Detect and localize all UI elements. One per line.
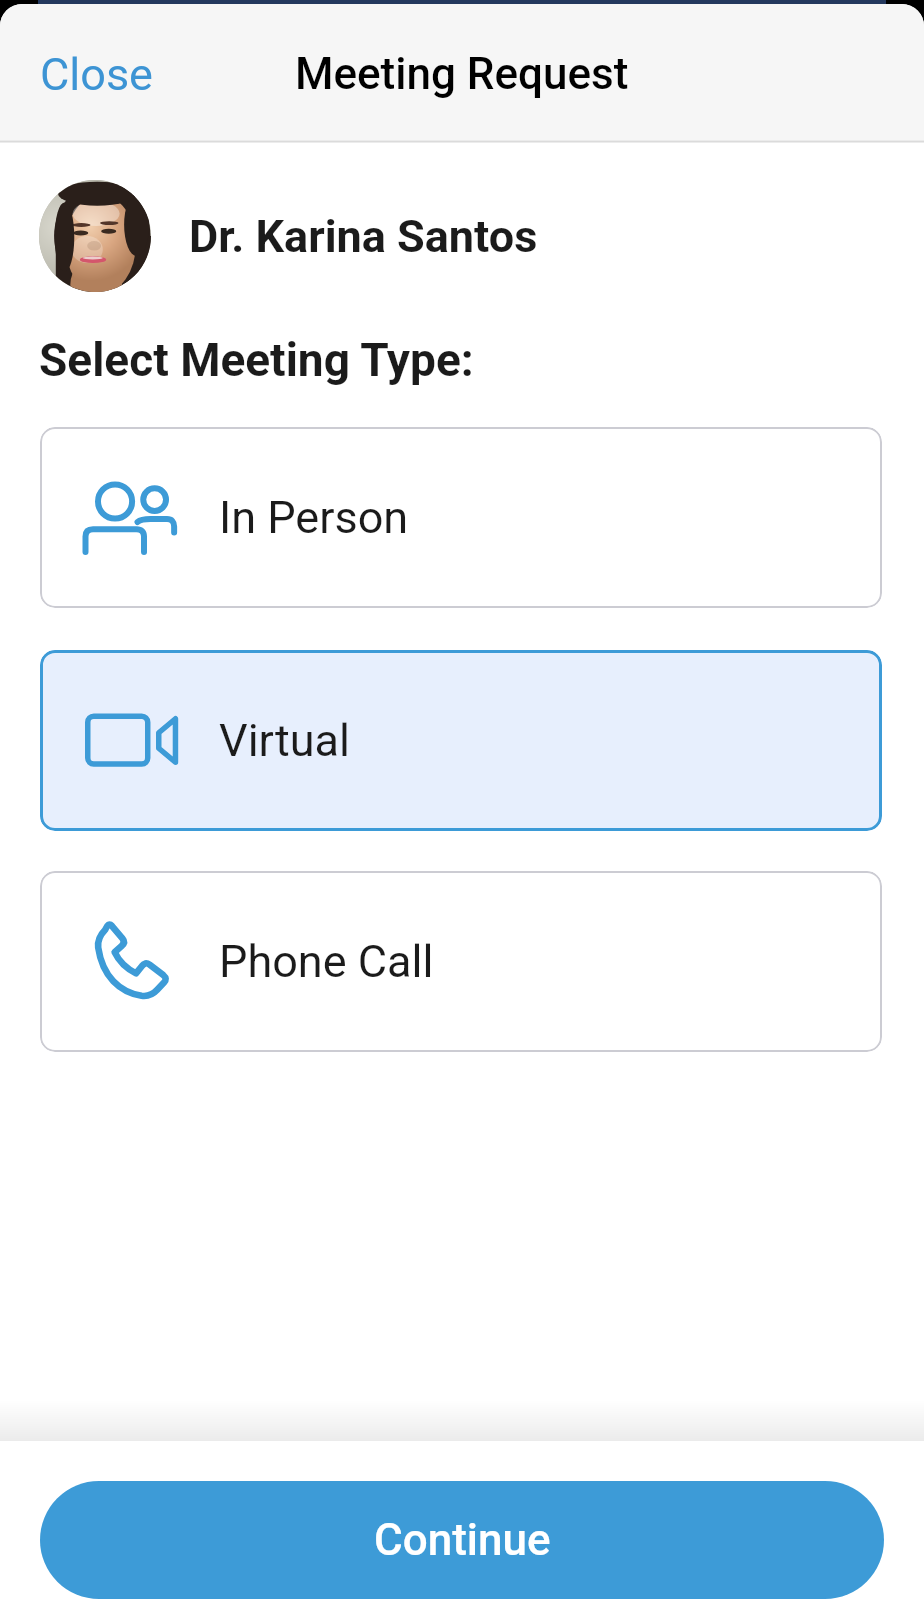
other: Phone call [82,912,182,1012]
other: Virtual meeting [82,691,182,791]
button[interactable]: Close [18,36,175,113]
staticText: Virtual [219,714,350,767]
other: In person meeting [82,468,182,568]
staticText: Meeting Request [295,48,629,100]
staticText: Select Meeting Type: [39,333,474,387]
button[interactable]: Virtual meeting [40,650,882,831]
button[interactable]: Phone call [40,871,882,1052]
button[interactable]: Continue [40,1481,884,1599]
staticText: Dr. Karina Santos [189,210,538,263]
staticText: In Person [219,491,409,544]
staticText: Close [40,48,153,101]
staticText: Continue [374,1514,551,1566]
button[interactable]: In person meeting [40,427,882,608]
staticText: Phone Call [219,935,434,988]
